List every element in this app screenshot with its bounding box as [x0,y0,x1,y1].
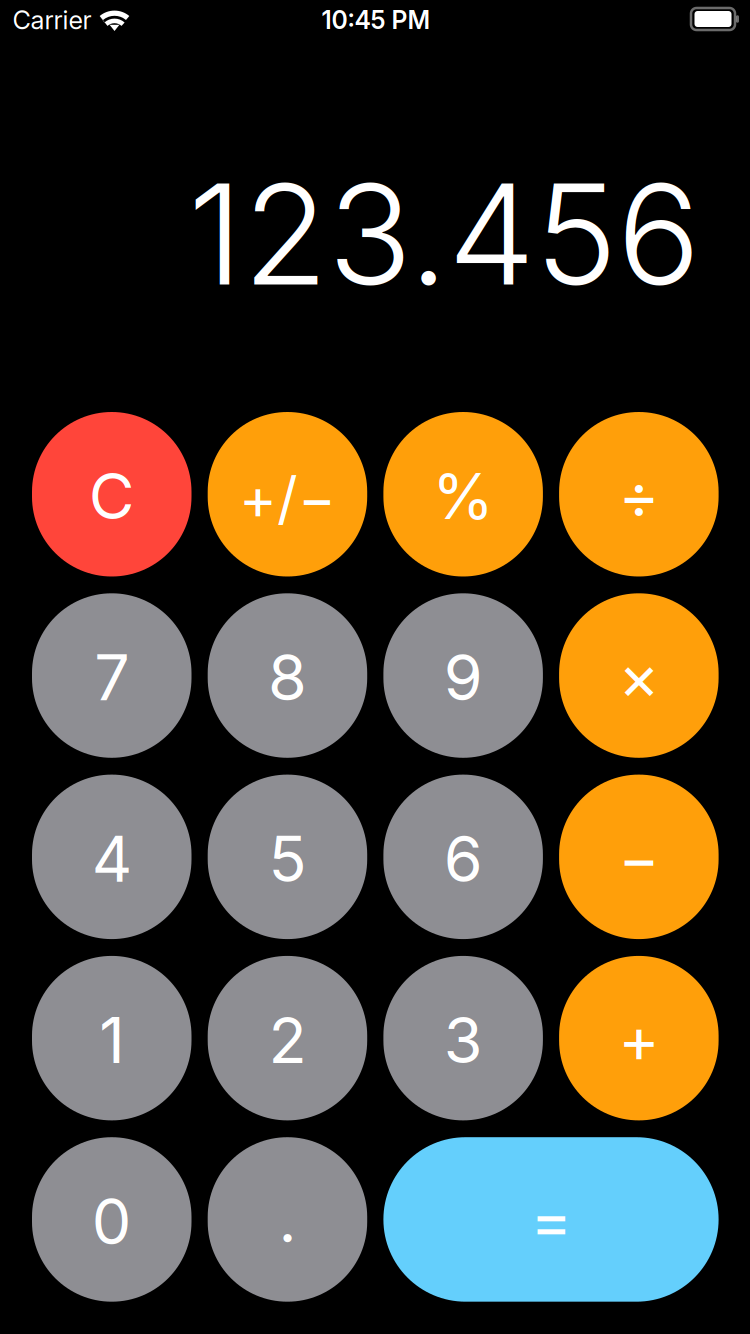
button[interactable]: minus [559,775,719,939]
button[interactable]: plus minus [208,412,367,576]
staticText: 6 [444,821,483,897]
staticText: × [618,639,659,714]
staticText: 9 [444,640,483,715]
staticText: 8 [268,640,307,715]
staticText: − [618,820,659,896]
button[interactable]: 2 [208,956,367,1120]
staticText: 1 [99,1002,124,1078]
staticText: C [89,458,135,534]
staticText: % [432,458,494,534]
staticText: 10:45 PM [321,5,430,35]
staticText: 4 [92,821,132,897]
button[interactable]: 0 [32,1137,191,1302]
button[interactable]: 7 [32,593,191,758]
button[interactable]: multiply [559,593,719,758]
button[interactable]: 1 [32,956,191,1120]
staticText: +/− [239,464,336,533]
button[interactable]: percent [383,412,543,576]
staticText: Carrier [12,5,91,35]
staticText: = [530,1182,571,1258]
button[interactable]: clear [32,412,191,576]
staticText: 5 [268,821,306,897]
staticText: + [618,1001,659,1077]
button[interactable]: divide [559,412,719,576]
staticText: 0 [92,1183,132,1259]
button[interactable]: 3 [383,956,543,1120]
button[interactable]: equals [383,1137,719,1302]
staticText: 7 [94,640,129,715]
staticText: . [278,1181,296,1257]
staticText: 3 [444,1002,483,1078]
staticText: ÷ [618,457,659,533]
button[interactable]: 8 [208,593,367,758]
staticText: 2 [268,1002,306,1078]
button[interactable]: 5 [208,775,367,939]
button[interactable]: 9 [383,593,543,758]
staticText: 123.456 [188,150,700,318]
button[interactable]: decimal point [208,1137,367,1302]
button[interactable]: 4 [32,775,191,939]
button[interactable]: 6 [383,775,543,939]
button[interactable]: plus [559,956,719,1120]
